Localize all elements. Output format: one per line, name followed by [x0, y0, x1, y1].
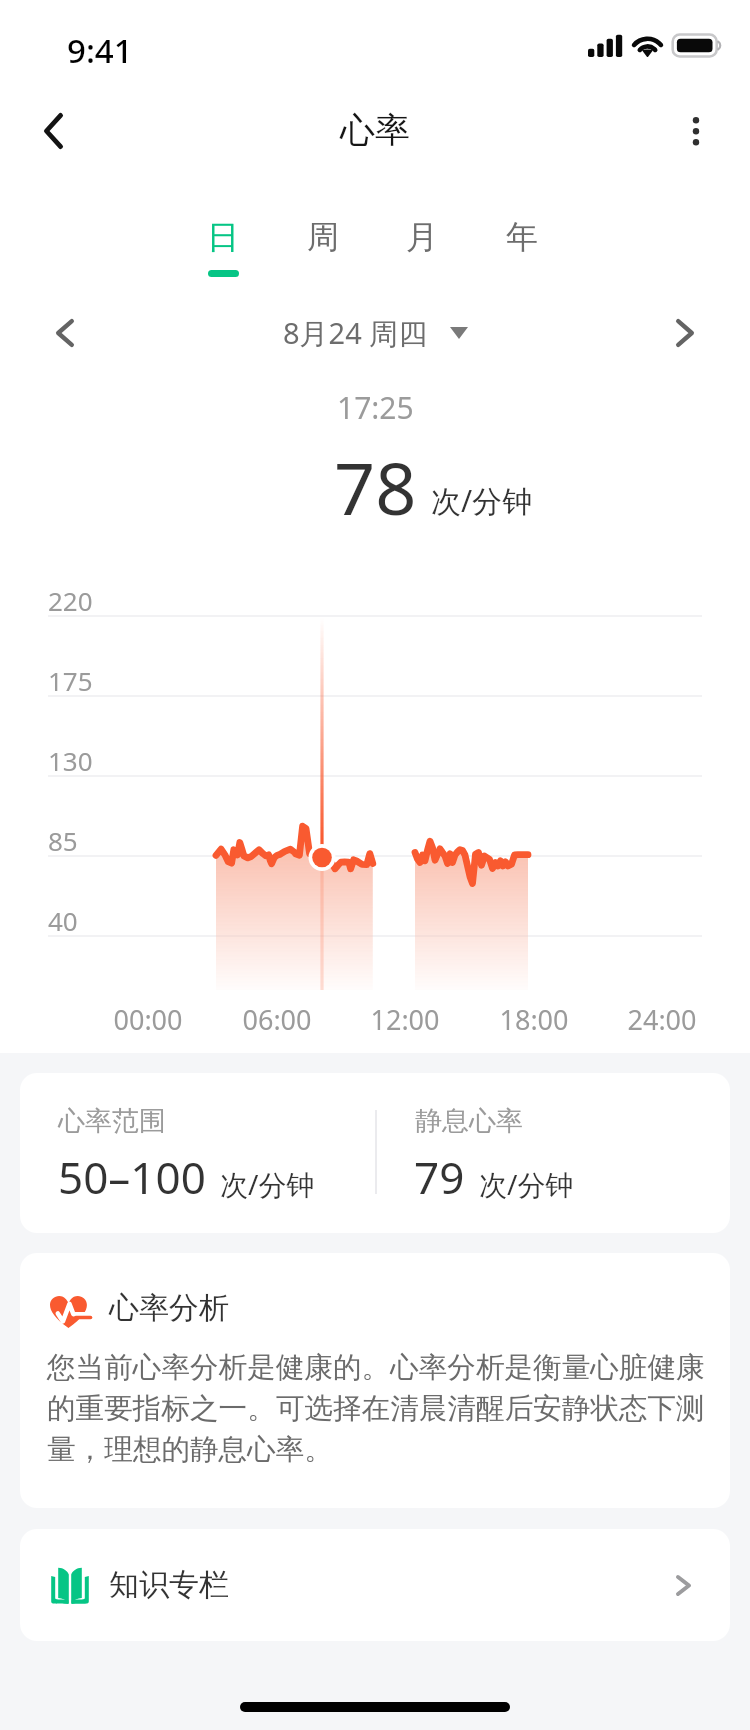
- button[interactable]: Previous day: [34, 302, 96, 364]
- staticText: 00:00: [113, 1001, 183, 1038]
- button[interactable]: Next day: [654, 302, 716, 364]
- staticText: 175: [48, 663, 93, 698]
- staticText: 130: [48, 743, 93, 778]
- staticText: 次/分钟: [431, 480, 533, 521]
- button[interactable]: Back: [20, 98, 86, 164]
- staticText: 18:00: [499, 1001, 569, 1038]
- staticText: 心率范围: [58, 1104, 166, 1138]
- staticText: 220: [48, 583, 93, 618]
- staticText: 年: [506, 217, 538, 257]
- staticText: 您当前心率分析是健康的。心率分析是衡量心脏健康的重要指标之一。可选择在清晨清醒后…: [47, 1349, 711, 1467]
- button[interactable]: 心率分析: [20, 1253, 730, 1508]
- button[interactable]: 周: [279, 208, 367, 284]
- staticText: 50–100: [58, 1147, 206, 1207]
- staticText: 月: [406, 217, 438, 257]
- staticText: 次/分钟: [479, 1165, 574, 1203]
- staticText: 40: [48, 903, 78, 938]
- staticText: 静息心率: [415, 1104, 523, 1138]
- button[interactable]: 年: [478, 208, 566, 284]
- button[interactable]: 8月24 周四: [283, 313, 468, 353]
- staticText: 次/分钟: [220, 1165, 315, 1203]
- staticText: 8月24 周四: [283, 313, 428, 353]
- staticText: 知识专栏: [109, 1566, 229, 1604]
- staticText: 心率分析: [109, 1289, 229, 1327]
- staticText: 9:41: [67, 28, 133, 73]
- staticText: 06:00: [242, 1001, 312, 1038]
- button[interactable]: 日: [179, 208, 267, 284]
- button[interactable]: 月: [378, 208, 466, 284]
- staticText: 78: [334, 438, 417, 536]
- button[interactable]: 心率范围: [20, 1073, 730, 1233]
- staticText: 12:00: [370, 1001, 440, 1038]
- staticText: 24:00: [627, 1001, 697, 1038]
- staticText: 日: [207, 217, 239, 257]
- staticText: 17:25: [337, 387, 414, 428]
- staticText: 心率: [340, 108, 410, 152]
- button[interactable]: 知识专栏: [20, 1529, 730, 1641]
- staticText: 周: [307, 217, 339, 257]
- staticText: 85: [48, 823, 78, 858]
- button[interactable]: More options: [663, 98, 729, 164]
- staticText: 79: [414, 1147, 465, 1207]
